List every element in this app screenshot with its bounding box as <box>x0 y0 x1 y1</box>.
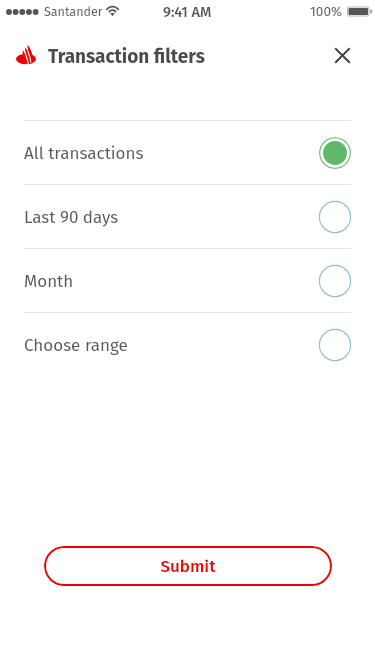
staticText: 9:41 AM <box>163 3 212 20</box>
staticText: Transaction filters <box>48 45 205 68</box>
button[interactable]: Submit <box>44 546 332 586</box>
staticText: 100% <box>310 3 343 19</box>
staticText: Last 90 days <box>24 207 319 227</box>
button[interactable]: All transactions <box>0 121 375 184</box>
staticText: Month <box>24 271 319 291</box>
button[interactable]: Close <box>325 38 359 72</box>
staticText: All transactions <box>24 143 319 163</box>
staticText: Santander <box>44 4 103 19</box>
staticText: Submit <box>160 556 216 576</box>
button[interactable]: Month <box>0 249 375 312</box>
staticText: Choose range <box>24 335 319 355</box>
button[interactable]: Last 90 days <box>0 185 375 248</box>
button[interactable]: Choose range <box>0 313 375 376</box>
